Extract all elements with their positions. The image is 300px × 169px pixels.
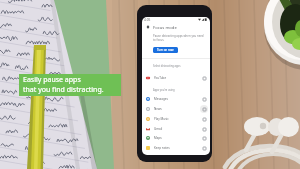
staticText: Select distracting apps xyxy=(153,64,181,68)
staticText: Pause distracting apps when you need xyxy=(153,34,204,38)
staticText: Keep notes xyxy=(154,146,170,150)
button[interactable]: Gmail xyxy=(142,124,210,134)
staticText: to focus. xyxy=(153,38,165,42)
button[interactable]: Turn on now xyxy=(153,47,178,53)
staticText: Play Music xyxy=(154,117,169,121)
other: Status icons xyxy=(198,18,208,21)
staticText: Apps you're using xyxy=(153,88,175,92)
button[interactable]: Easily pause apps xyxy=(19,74,121,96)
button[interactable]: Play Music xyxy=(142,114,210,124)
button[interactable]: News xyxy=(142,104,210,114)
staticText: News xyxy=(154,107,162,111)
staticText: that you find distracting. xyxy=(23,85,104,95)
staticText: Easily pause apps xyxy=(23,75,81,85)
staticText: YouTube xyxy=(154,76,167,80)
button[interactable]: Messages xyxy=(142,94,210,104)
button[interactable]: YouTube xyxy=(142,73,210,83)
staticText: Messages xyxy=(154,97,168,101)
staticText: Turn on now xyxy=(157,48,174,52)
staticText: Gmail xyxy=(154,127,163,131)
button[interactable]: Keep notes xyxy=(142,143,210,153)
staticText: Focus mode xyxy=(153,25,177,31)
staticText: 4:05 xyxy=(144,18,151,22)
button[interactable]: Maps xyxy=(142,133,210,143)
staticText: Maps xyxy=(154,136,162,140)
